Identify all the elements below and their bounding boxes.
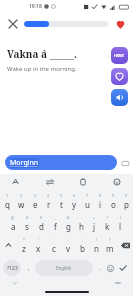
button[interactable]: 5 (55, 190, 68, 212)
staticText: 5 (60, 193, 63, 198)
button[interactable]: Hearts (113, 17, 127, 31)
staticText: b (80, 243, 85, 254)
staticText: v (66, 243, 71, 254)
staticText: 1 (6, 193, 9, 198)
button[interactable]: ( (101, 212, 114, 234)
button[interactable]: : (61, 234, 75, 256)
staticText: - (81, 215, 83, 220)
staticText: w (18, 199, 25, 210)
staticText: c (52, 243, 56, 254)
button[interactable]: ? (103, 234, 117, 256)
button[interactable]: Shift (0, 234, 16, 256)
staticText: 19:18 (29, 3, 42, 10)
button[interactable]: Comma (24, 260, 33, 276)
button[interactable]: HINT (111, 47, 128, 64)
staticText: g (66, 221, 71, 232)
staticText: p (124, 199, 129, 210)
button[interactable]: 6 (68, 190, 81, 212)
staticText: English (56, 265, 72, 271)
staticText: s (25, 221, 29, 232)
button[interactable]: 4 (42, 190, 55, 212)
button[interactable]: 3 (28, 190, 42, 212)
button[interactable]: Keyboard (120, 158, 130, 168)
staticText: $ (40, 215, 43, 220)
button[interactable]: Translate (10, 176, 22, 188)
button[interactable]: ' (46, 234, 61, 256)
staticText: e (33, 199, 38, 210)
button[interactable]: Emoji (104, 260, 116, 276)
staticText: @ (11, 215, 15, 220)
staticText: r (47, 199, 51, 210)
staticText: + (93, 215, 96, 220)
staticText: 2 (20, 193, 23, 198)
button[interactable]: " (31, 234, 46, 256)
staticText: ' (53, 237, 54, 242)
staticText: 4 (47, 193, 50, 198)
staticText: 3 (34, 193, 37, 198)
staticText: n (94, 243, 99, 254)
button[interactable]: Close (6, 17, 20, 31)
button[interactable]: + (88, 212, 101, 234)
button[interactable]: ) (114, 212, 127, 234)
button[interactable]: Enter (116, 260, 130, 276)
staticText: 7 (86, 193, 89, 198)
button[interactable]: 2 (14, 190, 28, 212)
button[interactable]: 8 (94, 190, 107, 212)
button[interactable]: 1 (0, 190, 14, 212)
button[interactable]: @ (6, 212, 20, 234)
button[interactable]: Favourite (111, 68, 128, 85)
staticText: ) (120, 215, 122, 220)
button[interactable]: ! (89, 234, 103, 256)
staticText: & (67, 215, 70, 220)
staticText: m (106, 243, 114, 254)
button[interactable]: ; (75, 234, 89, 256)
button[interactable]: # (20, 212, 34, 234)
staticText: l (119, 221, 122, 232)
button[interactable]: Morginn (5, 155, 117, 170)
staticText: i (99, 199, 102, 210)
button[interactable]: Backspace (117, 234, 133, 256)
button[interactable]: Clipboard (77, 176, 89, 188)
staticText: x (36, 243, 41, 254)
button[interactable]: ?123 (3, 260, 21, 276)
staticText: . (74, 47, 77, 61)
button[interactable]: 9 (107, 190, 120, 212)
staticText: , (28, 264, 30, 272)
staticText: : (68, 237, 69, 242)
staticText: u (85, 199, 90, 210)
button[interactable]: Switch (44, 176, 56, 188)
staticText: z (22, 243, 26, 254)
staticText: Wake up in the morning. (7, 65, 77, 73)
staticText: t (60, 199, 63, 210)
button[interactable]: English (35, 260, 93, 276)
button[interactable]: 0 (120, 190, 133, 212)
staticText: ( (107, 215, 109, 220)
button[interactable]: 7 (81, 190, 94, 212)
staticText: _ (54, 215, 56, 220)
button[interactable]: * (16, 234, 31, 256)
button[interactable]: Settings (111, 176, 123, 188)
staticText: 9 (112, 193, 115, 198)
button[interactable]: - (75, 212, 88, 234)
staticText: y (72, 199, 77, 210)
button[interactable]: Play audio (111, 89, 128, 106)
staticText: a (11, 221, 16, 232)
staticText: 8 (99, 193, 102, 198)
staticText: q (5, 199, 10, 210)
staticText: ; (82, 237, 83, 242)
staticText: # (26, 215, 29, 220)
staticText: " (38, 237, 40, 242)
staticText: k (105, 221, 110, 232)
staticText: d (39, 221, 44, 232)
button[interactable]: Period (95, 260, 104, 276)
staticText: ? (109, 237, 111, 242)
button[interactable]: & (62, 212, 75, 234)
staticText: o (111, 199, 116, 210)
staticText: ! (96, 237, 97, 242)
button[interactable]: _ (48, 212, 62, 234)
staticText: HINT (114, 53, 125, 58)
button[interactable]: $ (34, 212, 48, 234)
staticText: j (93, 221, 96, 232)
staticText: h (79, 221, 84, 232)
staticText: * (23, 237, 25, 242)
